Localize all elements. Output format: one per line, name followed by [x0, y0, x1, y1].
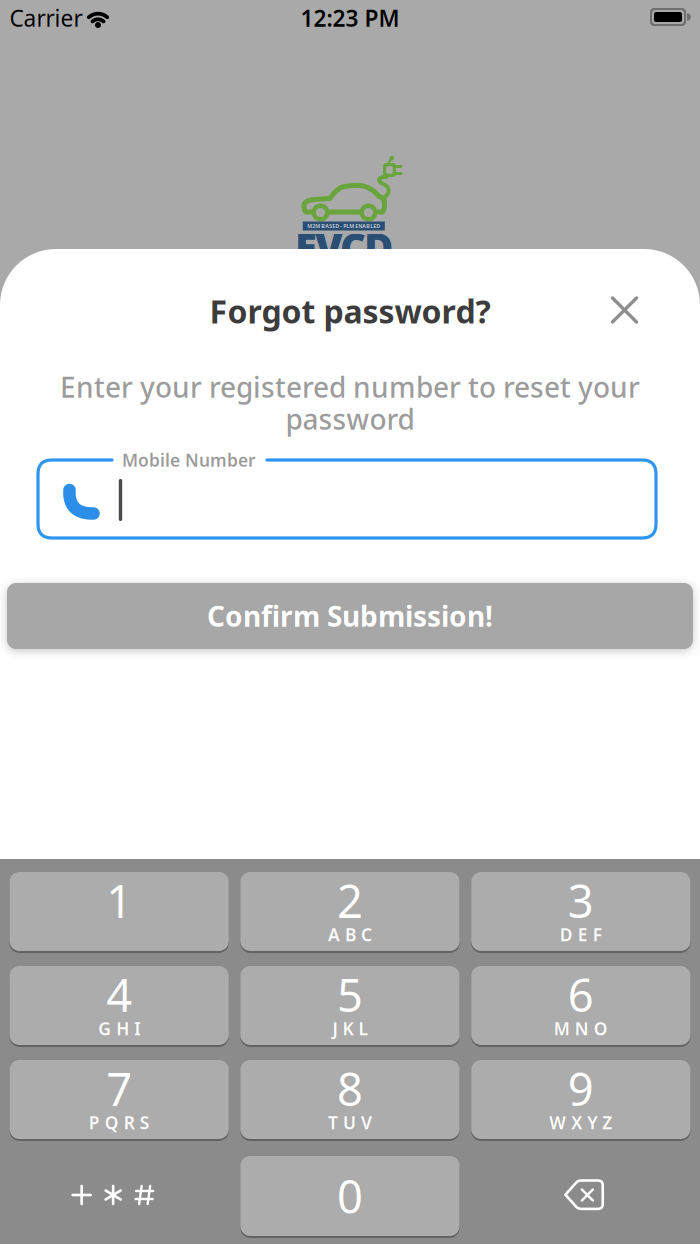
staticText: 3 [568, 870, 594, 931]
button[interactable]: 4 [9, 966, 229, 1045]
staticText: 2 [337, 870, 363, 931]
staticText: D E F [560, 923, 602, 946]
staticText: Confirm Submission! [207, 597, 493, 635]
staticText: password [285, 400, 414, 438]
staticText: J K L [332, 1017, 367, 1040]
staticText: 6 [568, 964, 594, 1025]
button[interactable]: 3 [471, 872, 690, 951]
button[interactable]: Close [606, 292, 642, 328]
staticText: Forgot password? [209, 290, 490, 332]
staticText: 5 [337, 964, 363, 1025]
staticText: T U V [328, 1111, 372, 1134]
staticText: 7 [106, 1058, 132, 1119]
staticText: 8 [337, 1058, 363, 1119]
staticText: 4 [106, 964, 132, 1025]
staticText: M N O [554, 1017, 608, 1040]
staticText: M2M BASED - PLM ENABLED [307, 222, 380, 230]
staticText: A B C [328, 923, 372, 946]
staticText: 0 [337, 1166, 363, 1226]
button[interactable]: 6 [471, 966, 690, 1045]
button[interactable]: 8 [240, 1060, 460, 1139]
staticText: 9 [568, 1058, 594, 1119]
button[interactable]: 0 [240, 1156, 460, 1236]
button[interactable]: Delete [475, 1155, 694, 1235]
button[interactable]: 2 [240, 872, 460, 951]
button[interactable]: Confirm Submission! [7, 583, 693, 649]
staticText: Enter your registered number to reset yo… [60, 368, 640, 406]
button[interactable]: Mobile Number [38, 460, 656, 538]
staticText: EVCD [295, 220, 393, 273]
staticText: W X Y Z [549, 1111, 612, 1134]
staticText: 12:23 PM [300, 3, 399, 33]
button[interactable]: 9 [471, 1060, 690, 1139]
button[interactable]: Symbols [3, 1155, 223, 1235]
staticText: G H I [98, 1017, 140, 1040]
button[interactable]: 7 [9, 1060, 229, 1139]
staticText: Mobile Number [122, 448, 256, 471]
staticText: 1 [106, 870, 132, 931]
staticText: Carrier [9, 3, 82, 33]
button[interactable]: 5 [240, 966, 460, 1045]
staticText: P Q R S [89, 1111, 150, 1134]
button[interactable]: 1 [9, 872, 229, 951]
